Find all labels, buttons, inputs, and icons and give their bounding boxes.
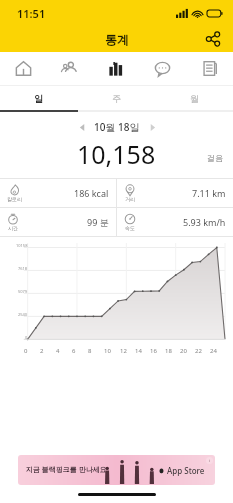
staticText: 2540: [18, 312, 28, 317]
button[interactable]: 일: [0, 86, 77, 110]
staticText: 7618: [18, 266, 28, 271]
staticText: 20: [180, 347, 195, 355]
button[interactable]: 칼로리: [0, 179, 116, 207]
staticText: 10158: [16, 243, 28, 248]
button[interactable]: 지금 블랙핑크를 만나세요: [18, 455, 215, 485]
button[interactable]: 주: [77, 86, 155, 110]
staticText: 22: [195, 347, 210, 355]
staticText: 14: [135, 347, 150, 355]
button[interactable]: 거리: [117, 179, 233, 207]
staticText: 시간: [8, 225, 18, 231]
button[interactable]: Share: [201, 27, 225, 51]
staticText: 칼로리: [7, 196, 22, 202]
staticText: 5.93 km/h: [183, 216, 226, 228]
button[interactable]: Friends: [46, 52, 92, 85]
staticText: 16: [150, 347, 165, 355]
staticText: 4: [56, 347, 72, 355]
staticText: 일: [34, 93, 43, 104]
button[interactable]: 속도: [117, 208, 233, 236]
staticText: 18: [165, 347, 180, 355]
staticText: 12: [120, 347, 135, 355]
staticText: 월: [190, 93, 199, 104]
staticText: 8: [88, 347, 104, 355]
staticText: 주: [112, 93, 121, 104]
staticText: 2: [40, 347, 56, 355]
staticText: 0: [24, 347, 40, 355]
staticText: 10월 18일: [94, 120, 140, 134]
staticText: 통계: [105, 32, 129, 47]
staticText: 10: [104, 347, 120, 355]
button[interactable]: 월: [155, 86, 233, 110]
staticText: 10,158: [77, 137, 156, 171]
staticText: 속도: [125, 225, 135, 231]
button[interactable]: Statistics: [92, 52, 139, 85]
button[interactable]: Chat: [139, 52, 186, 85]
button[interactable]: Home: [0, 52, 46, 85]
staticText: App Store: [167, 465, 205, 476]
staticText: 24: [210, 347, 225, 355]
staticText: i: [209, 458, 211, 463]
staticText: 걸음: [207, 153, 223, 163]
staticText: 0: [25, 335, 28, 340]
staticText: 거리: [125, 196, 135, 202]
button[interactable]: Next day: [144, 119, 160, 135]
staticText: 지금 블랙핑크를 만나세요: [26, 465, 107, 475]
staticText: 5079: [18, 289, 28, 294]
staticText: 186 kcal: [74, 187, 109, 199]
button[interactable]: Previous day: [74, 119, 90, 135]
staticText: 7.11 km: [192, 187, 226, 199]
button[interactable]: Records: [186, 52, 233, 85]
staticText: 99 분: [87, 216, 109, 228]
button[interactable]: 시간: [0, 208, 116, 236]
staticText: 6: [72, 347, 88, 355]
button[interactable]: Ad info: [206, 457, 213, 464]
staticText: 11:51: [17, 6, 46, 21]
